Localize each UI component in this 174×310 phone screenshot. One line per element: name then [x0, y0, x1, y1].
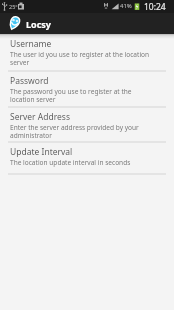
button[interactable]: Server Address — [0, 107, 174, 142]
staticText: Username — [10, 38, 52, 50]
staticText: 41% — [120, 2, 132, 10]
button[interactable]: Password — [0, 71, 174, 107]
staticText: 25° — [9, 3, 18, 10]
staticText: Server Address — [10, 111, 70, 123]
staticText: Enter the server address provided by you… — [10, 123, 152, 139]
staticText: Password — [10, 75, 49, 87]
button[interactable]: Update Interval — [0, 142, 174, 174]
staticText: The user id you use to register at the l… — [10, 50, 152, 66]
staticText: The location update interval in seconds — [10, 158, 152, 167]
staticText: Update Interval — [10, 146, 73, 158]
staticText: 10:24 — [144, 1, 166, 13]
staticText: Locsy — [26, 18, 51, 30]
button[interactable]: Username — [0, 34, 174, 71]
staticText: The password you use to register at the … — [10, 87, 152, 103]
